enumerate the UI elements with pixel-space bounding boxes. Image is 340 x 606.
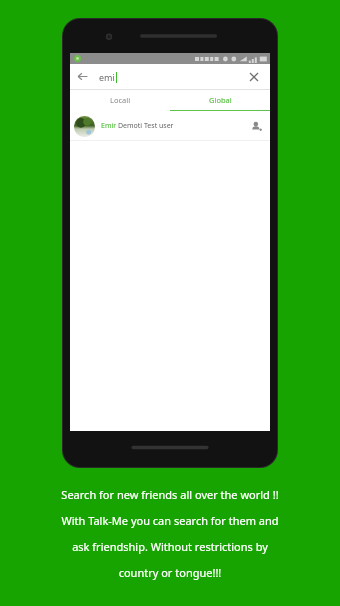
staticText: With Talk-Me you can search for them and xyxy=(16,513,324,528)
button[interactable]: Back xyxy=(70,64,95,89)
staticText: emi xyxy=(99,71,115,83)
button[interactable]: Add friend xyxy=(246,116,266,136)
staticText: Search for new friends all over the worl… xyxy=(16,487,324,502)
staticText: Emir Demoti Test user xyxy=(101,121,246,131)
staticText: ask friendship. Without restrictions by xyxy=(16,539,324,554)
button[interactable]: Global xyxy=(170,90,270,110)
staticText: Global xyxy=(209,95,232,105)
staticText: country or tongue!!! xyxy=(16,565,324,580)
button[interactable]: Locali xyxy=(70,90,170,110)
button[interactable]: Clear search xyxy=(241,64,266,89)
staticText: Locali xyxy=(110,95,131,105)
button[interactable]: Emir Demoti Test user xyxy=(70,112,270,140)
